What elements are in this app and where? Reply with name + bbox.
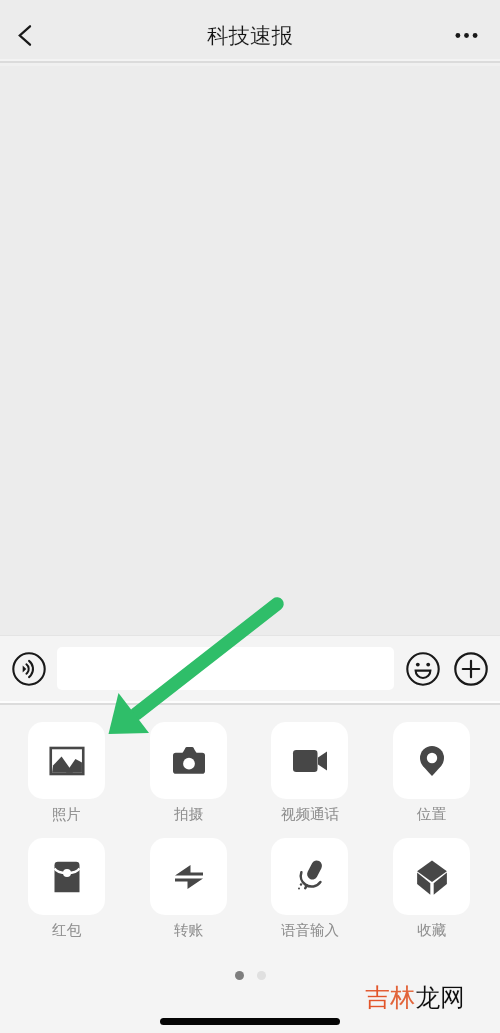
staticText: 位置 [417,805,446,823]
staticText: 语音输入 [281,921,339,939]
button[interactable]: 红包 [28,838,105,939]
staticText: 视频通话 [281,805,339,823]
button[interactable]: 位置 [393,722,470,823]
button[interactable]: 拍摄 [150,722,227,823]
button[interactable]: Voice input [12,652,46,686]
button[interactable]: 收藏 [393,838,470,939]
button[interactable]: Back [0,12,50,59]
staticText: 红包 [52,921,81,939]
staticText: 科技速报 [207,22,293,49]
button[interactable] [57,647,394,690]
button[interactable]: 转账 [150,838,227,939]
staticText: 拍摄 [174,805,203,823]
button[interactable]: Emoji [406,652,440,686]
staticText: 吉 [365,982,390,1013]
staticText: 龙网 [415,982,465,1013]
staticText: 转账 [174,921,203,939]
staticText: 照片 [52,805,81,823]
button[interactable]: 视频通话 [271,722,348,823]
staticText: 收藏 [417,921,446,939]
button[interactable]: More options [450,12,500,59]
staticText: 林 [390,982,415,1013]
button[interactable]: 语音输入 [271,838,348,939]
button[interactable]: More functions [454,652,488,686]
button[interactable]: 照片 [28,722,105,823]
